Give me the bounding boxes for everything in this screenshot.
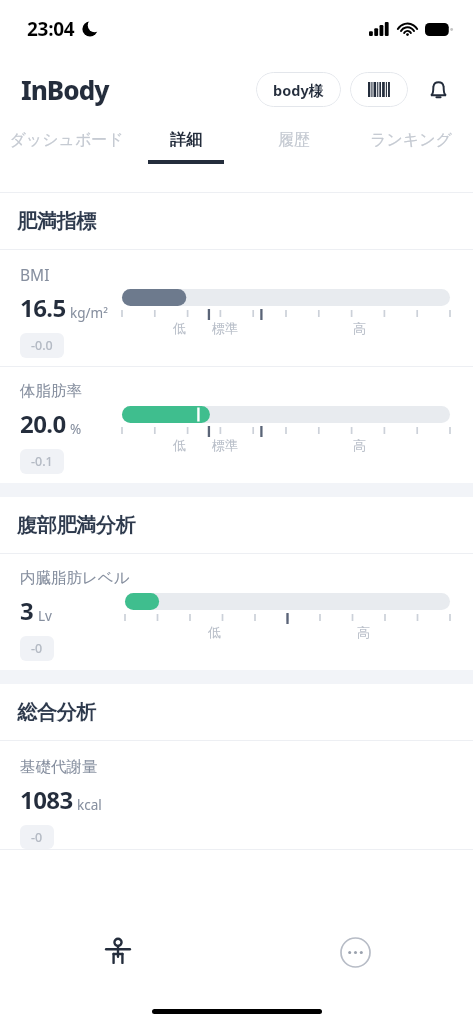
button[interactable]: 詳細 [132, 120, 240, 192]
button[interactable]: Body composition [90, 924, 146, 980]
staticText: 20.0 [20, 407, 66, 440]
staticText: 肥満指標 [17, 209, 96, 234]
staticText: 1083 [20, 783, 73, 816]
staticText: BMI [20, 264, 50, 285]
button[interactable]: Barcode scanner [350, 72, 408, 107]
button[interactable]: ランキング [348, 120, 473, 192]
staticText: 体脂肪率 [20, 381, 82, 401]
staticText: kg/m² [70, 304, 108, 322]
staticText: 標準 [212, 437, 238, 453]
staticText: 23:04 [27, 16, 75, 42]
button[interactable]: Notifications [418, 69, 458, 109]
button[interactable]: BMI [0, 250, 473, 366]
staticText: 腹部肥満分析 [17, 513, 136, 538]
staticText: 高 [357, 624, 370, 640]
staticText: kcal [77, 796, 102, 814]
staticText: % [70, 420, 82, 438]
button[interactable]: More options [327, 924, 383, 980]
button[interactable]: body様 [256, 72, 341, 107]
staticText: Lv [38, 607, 52, 625]
staticText: -0.1 [31, 453, 53, 470]
staticText: 低 [208, 624, 221, 640]
staticText: -0 [31, 829, 43, 845]
staticText: 基礎代謝量 [20, 757, 98, 777]
staticText: 履歴 [278, 130, 310, 150]
button[interactable]: 基礎代謝量 [0, 741, 473, 849]
staticText: -0.0 [31, 337, 53, 354]
staticText: 詳細 [170, 130, 202, 150]
staticText: 高 [353, 320, 366, 336]
button[interactable]: 体脂肪率 [0, 367, 473, 483]
staticText: 高 [353, 437, 366, 453]
button[interactable]: 内臓脂肪レベル [0, 554, 473, 670]
staticText: -0 [31, 640, 43, 657]
staticText: 低 [173, 320, 186, 336]
staticText: 低 [173, 437, 186, 453]
button[interactable]: 履歴 [240, 120, 348, 192]
staticText: 内臓脂肪レベル [20, 568, 130, 588]
staticText: ランキング [370, 130, 452, 150]
staticText: 総合分析 [17, 700, 96, 725]
button[interactable]: ダッシュボード [0, 120, 132, 192]
staticText: 標準 [212, 320, 238, 336]
staticText: ダッシュボード [9, 130, 124, 150]
staticText: InBody [21, 72, 109, 107]
staticText: body様 [273, 80, 324, 100]
staticText: 16.5 [20, 291, 66, 324]
staticText: 3 [20, 594, 34, 627]
